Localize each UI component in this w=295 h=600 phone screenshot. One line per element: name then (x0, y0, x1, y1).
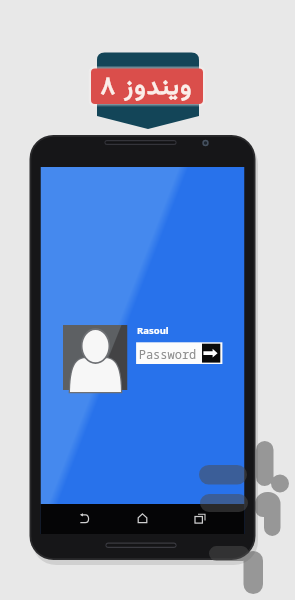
button[interactable]: Windows 8 lock screen app preview (0, 0, 295, 600)
